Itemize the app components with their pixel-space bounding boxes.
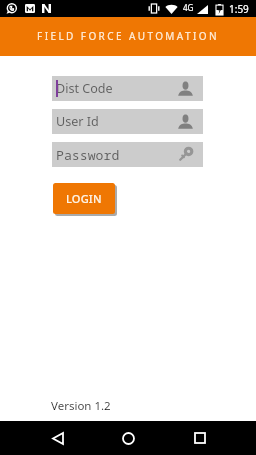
staticText: Version 1.2 <box>51 398 111 414</box>
staticText: Password <box>56 146 120 164</box>
staticText: Dist Code <box>56 80 113 97</box>
staticText: 4G <box>183 2 194 13</box>
button[interactable]: Back <box>40 421 75 455</box>
staticText: LOGIN <box>66 191 102 206</box>
staticText: FIELD FORCE AUTOMATION <box>37 29 219 43</box>
button[interactable]: User Id <box>52 109 203 134</box>
button[interactable]: Home <box>111 421 146 455</box>
button[interactable]: Password <box>52 142 203 167</box>
button[interactable]: LOGIN <box>53 183 115 214</box>
staticText: User Id <box>56 113 99 130</box>
staticText: 1:59 <box>229 2 249 16</box>
button[interactable]: Recents <box>182 421 217 455</box>
button[interactable]: Dist Code <box>52 76 203 101</box>
